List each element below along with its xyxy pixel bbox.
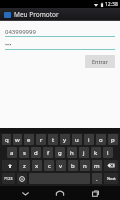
- button[interactable]: j: [79, 147, 89, 158]
- staticText: l: [107, 149, 109, 157]
- button[interactable]: t: [48, 134, 58, 145]
- staticText: x: [35, 162, 39, 170]
- button[interactable]: Recent apps: [85, 186, 105, 200]
- button[interactable]: key: [104, 160, 118, 171]
- button[interactable]: y: [60, 134, 70, 145]
- staticText: a: [10, 149, 14, 157]
- button[interactable]: •••: [5, 40, 115, 50]
- button[interactable]: v: [56, 160, 66, 171]
- staticText: q: [5, 136, 9, 144]
- staticText: z: [23, 162, 26, 170]
- staticText: f: [47, 149, 50, 157]
- staticText: k: [94, 149, 98, 157]
- button[interactable]: u: [72, 134, 82, 145]
- button[interactable]: m: [92, 160, 102, 171]
- button[interactable]: b: [68, 160, 78, 171]
- staticText: r: [40, 136, 43, 144]
- button[interactable]: ?123: [2, 173, 15, 184]
- staticText: d: [34, 149, 38, 157]
- button[interactable]: h: [67, 147, 77, 158]
- staticText: s: [23, 149, 26, 157]
- button[interactable]: 043999999: [5, 27, 115, 37]
- button[interactable]: d: [31, 147, 41, 158]
- button[interactable]: .: [92, 173, 102, 184]
- button[interactable]: q: [2, 134, 11, 145]
- button[interactable]: Next: [104, 173, 118, 184]
- button[interactable]: Entrar: [85, 55, 115, 68]
- button[interactable]: p: [108, 134, 118, 145]
- button[interactable]: c: [44, 160, 54, 171]
- staticText: w: [15, 136, 20, 144]
- staticText: b: [71, 162, 75, 170]
- staticText: y: [63, 136, 67, 144]
- staticText: v: [59, 162, 63, 170]
- button[interactable]: key: [2, 160, 17, 171]
- staticText: m: [94, 162, 100, 170]
- button[interactable]: Back: [15, 186, 35, 200]
- staticText: u: [75, 136, 79, 144]
- staticText: Next: [107, 176, 116, 181]
- button[interactable]: r: [36, 134, 46, 145]
- button[interactable]: l: [103, 147, 113, 158]
- staticText: ?123: [4, 176, 13, 181]
- button[interactable]: key: [17, 173, 27, 184]
- staticText: h: [70, 149, 74, 157]
- staticText: •••: [5, 41, 12, 48]
- button[interactable]: o: [96, 134, 106, 145]
- button[interactable]: Home: [50, 186, 70, 200]
- staticText: .: [96, 175, 98, 183]
- button[interactable]: n: [80, 160, 90, 171]
- button[interactable]: w: [13, 134, 22, 145]
- button[interactable]: e: [24, 134, 34, 145]
- staticText: 043999999: [5, 28, 36, 36]
- button[interactable]: a: [7, 147, 17, 158]
- staticText: g: [58, 149, 62, 157]
- staticText: n: [83, 162, 87, 170]
- button[interactable]: i: [84, 134, 94, 145]
- button[interactable]: g: [55, 147, 65, 158]
- staticText: Entrar: [92, 58, 108, 65]
- staticText: j: [83, 149, 85, 157]
- staticText: o: [99, 136, 103, 144]
- staticText: i: [88, 136, 90, 144]
- button[interactable]: k: [91, 147, 101, 158]
- staticText: 12:38: [105, 1, 118, 8]
- button[interactable]: x: [32, 160, 42, 171]
- staticText: t: [52, 136, 55, 144]
- staticText: c: [48, 162, 51, 170]
- button[interactable]: f: [43, 147, 53, 158]
- staticText: e: [27, 136, 31, 144]
- staticText: p: [111, 136, 115, 144]
- button[interactable]: s: [19, 147, 29, 158]
- staticText: Meu Promotor: [14, 10, 59, 19]
- button[interactable]: z: [19, 160, 30, 171]
